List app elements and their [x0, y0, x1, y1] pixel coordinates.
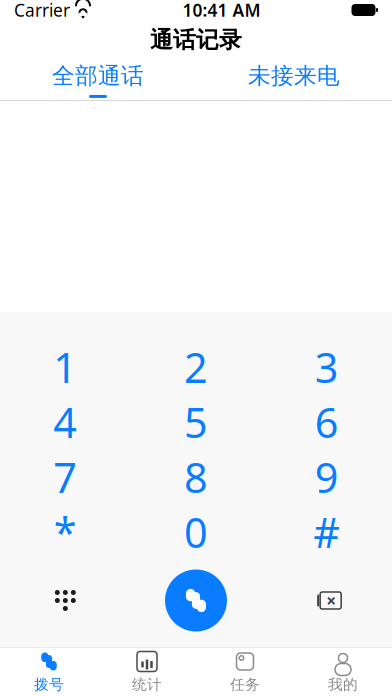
staticText: 5	[184, 395, 208, 449]
staticText: *	[54, 505, 77, 559]
staticText: ×	[326, 589, 336, 612]
staticText: #	[313, 505, 340, 559]
staticText: 10:41 AM	[182, 0, 260, 21]
button[interactable]: 3	[261, 339, 392, 394]
button[interactable]: 7	[0, 449, 131, 504]
button[interactable]: 拨号	[0, 648, 98, 696]
button[interactable]: 0	[131, 504, 261, 559]
button[interactable]: 8	[131, 449, 261, 504]
button[interactable]: 4	[0, 394, 131, 449]
staticText: 全部通话	[52, 62, 144, 90]
staticText: 拨号	[34, 675, 64, 693]
button[interactable]: 1	[0, 339, 131, 394]
staticText: 8	[184, 450, 208, 504]
button[interactable]: 键盘	[0, 569, 131, 631]
button[interactable]: #	[261, 504, 392, 559]
button[interactable]: 9	[261, 449, 392, 504]
button[interactable]: *	[0, 504, 131, 559]
button[interactable]: 任务	[196, 648, 294, 696]
button[interactable]: 删除	[261, 569, 392, 631]
button[interactable]: 统计	[98, 648, 196, 696]
button[interactable]: 未接来电	[196, 60, 392, 100]
staticText: 我的	[328, 675, 358, 693]
staticText: 未接来电	[248, 62, 340, 90]
staticText: 统计	[132, 675, 162, 693]
button[interactable]: 全部通话	[0, 60, 196, 100]
staticText: 0	[184, 505, 208, 559]
button[interactable]: 2	[131, 339, 261, 394]
staticText: 1	[53, 340, 77, 394]
staticText: 9	[315, 450, 339, 504]
button[interactable]: 6	[261, 394, 392, 449]
staticText: Carrier	[14, 0, 70, 21]
staticText: 7	[53, 450, 77, 504]
staticText: 任务	[230, 675, 260, 693]
staticText: 4	[53, 395, 77, 449]
staticText: 3	[315, 340, 339, 394]
staticText: 通话记录	[150, 26, 242, 54]
button[interactable]: 我的	[294, 648, 392, 696]
staticText: 2	[184, 340, 208, 394]
staticText: 6	[315, 395, 339, 449]
button[interactable]: 5	[131, 394, 261, 449]
button[interactable]: 拨打电话	[165, 569, 227, 631]
